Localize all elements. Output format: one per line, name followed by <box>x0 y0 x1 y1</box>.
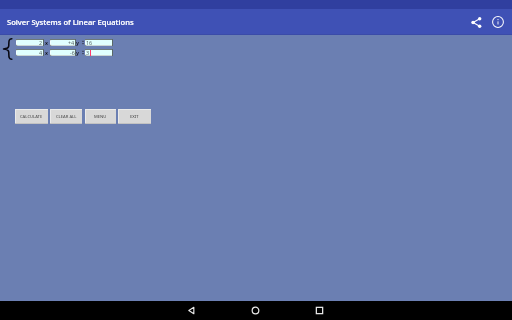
button[interactable]: CLEAR ALL <box>50 109 82 124</box>
button[interactable]: Recent apps <box>310 301 329 320</box>
staticText: MENU <box>94 114 107 120</box>
button[interactable]: -6 <box>50 49 76 56</box>
staticText: EXIT <box>130 114 139 120</box>
button[interactable]: Info <box>487 11 509 33</box>
staticText: y <box>76 39 80 46</box>
button[interactable]: +4 <box>50 39 76 46</box>
button[interactable]: Home <box>246 301 265 320</box>
button[interactable]: CALCULATE <box>15 109 48 124</box>
staticText: +4 <box>68 39 75 46</box>
staticText: -6 <box>70 49 75 56</box>
button[interactable]: EXIT <box>118 109 151 124</box>
staticText: x <box>45 49 48 56</box>
button[interactable]: 2 <box>16 39 44 46</box>
staticText: x <box>45 39 48 46</box>
staticText: 2 <box>39 39 43 46</box>
button[interactable]: 3 <box>85 49 113 56</box>
button[interactable]: 4 <box>16 49 44 56</box>
staticText: CLEAR ALL <box>56 114 77 120</box>
button[interactable]: Share <box>465 11 487 33</box>
button[interactable]: 16 <box>85 39 113 46</box>
staticText: y <box>76 49 80 56</box>
button[interactable]: MENU <box>85 109 116 124</box>
staticText: CALCULATE <box>20 114 43 120</box>
staticText: Solver Systems of Linear Equations <box>7 17 134 27</box>
staticText: 16 <box>86 39 93 46</box>
staticText: 3 <box>86 49 90 56</box>
staticText: 4 <box>39 49 43 56</box>
button[interactable]: Back <box>182 301 201 320</box>
